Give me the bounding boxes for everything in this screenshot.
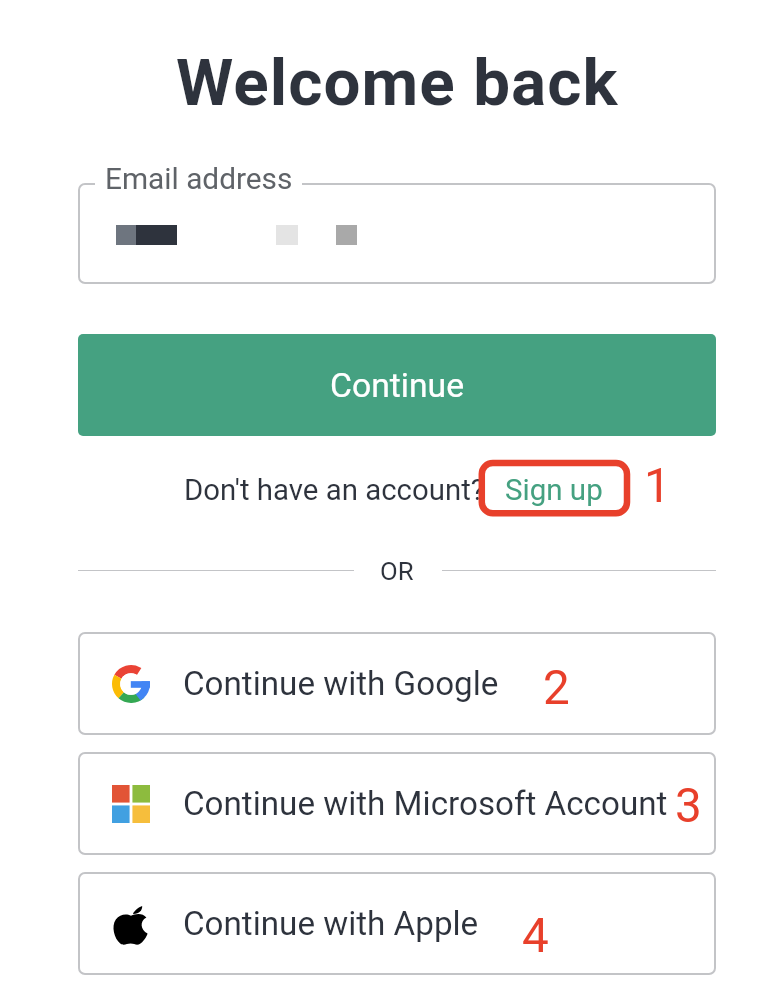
staticText: 3 [675, 778, 702, 834]
staticText: 4 [522, 908, 549, 964]
button[interactable]: Continue with Google [78, 632, 716, 735]
button[interactable]: Email address [78, 183, 716, 284]
staticText: Sign up [505, 473, 603, 508]
staticText: Email address [105, 161, 293, 196]
staticText: 2 [543, 660, 570, 716]
staticText: 1 [644, 458, 671, 514]
button[interactable]: Sign up [482, 464, 626, 516]
staticText: Continue with Microsoft Account [183, 784, 668, 823]
staticText: Continue with Google [183, 664, 499, 703]
staticText: Continue [330, 366, 464, 405]
button[interactable]: Continue [78, 334, 716, 436]
button[interactable]: Continue with Microsoft Account [78, 752, 716, 855]
staticText: Welcome back [176, 44, 619, 121]
staticText: Continue with Apple [183, 904, 479, 943]
staticText: Don't have an account? [184, 473, 485, 507]
button[interactable]: Continue with Apple [78, 872, 716, 975]
staticText: OR [380, 556, 414, 586]
